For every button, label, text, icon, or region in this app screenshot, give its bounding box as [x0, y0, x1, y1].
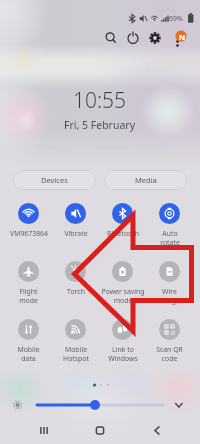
button[interactable]: VM9673864: [5, 203, 52, 255]
button[interactable]: Mobile data: [5, 319, 52, 371]
staticText: Wire ring: [162, 287, 177, 305]
staticText: Fri, 5 February: [64, 118, 136, 132]
staticText: VM9673864: [10, 229, 48, 238]
staticText: 69%: [169, 14, 183, 24]
staticText: Power saving mode: [101, 287, 145, 305]
button[interactable]: Power: [123, 28, 143, 48]
button[interactable]: Search: [101, 28, 121, 48]
staticText: Flight mode: [19, 287, 38, 305]
button[interactable]: Scan QR code: [146, 319, 193, 371]
staticText: Devices: [41, 175, 68, 185]
button[interactable]: Recents: [30, 418, 58, 442]
button[interactable]: Flight mode: [5, 261, 52, 313]
button[interactable]: Devices: [13, 170, 96, 190]
button[interactable]: Bluetooth: [99, 203, 146, 255]
staticText: N: [179, 32, 186, 42]
button[interactable]: Link to Windows: [99, 319, 146, 371]
staticText: Mobile Hotspot: [63, 345, 89, 363]
staticText: Media: [135, 175, 157, 185]
button[interactable]: Back: [143, 418, 171, 442]
staticText: Mobile data: [17, 345, 40, 363]
staticText: Vibrate: [64, 229, 88, 238]
staticText: Scan QR code: [156, 345, 183, 363]
button[interactable]: Power saving mode: [99, 261, 146, 313]
staticText: Auto rotate: [160, 229, 180, 247]
button[interactable]: Auto rotate: [146, 203, 193, 255]
button[interactable]: Vibrate: [52, 203, 99, 255]
button[interactable]: Media: [104, 170, 187, 190]
staticText: Link to Windows: [108, 345, 138, 363]
button[interactable]: Home: [86, 418, 114, 442]
button[interactable]: Mobile Hotspot: [52, 319, 99, 371]
button[interactable]: Torch: [52, 261, 99, 313]
button[interactable]: Settings: [145, 28, 165, 48]
staticText: 10:55: [73, 86, 127, 115]
button[interactable]: More options: [168, 28, 190, 50]
staticText: Bluetooth: [107, 229, 139, 238]
staticText: Torch: [67, 287, 85, 296]
button[interactable]: Wire ring: [146, 261, 193, 313]
